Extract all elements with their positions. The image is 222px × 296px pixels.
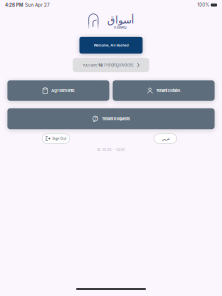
button[interactable]: Sign Out [42,134,70,143]
staticText: 4:28 PM [5,2,23,8]
staticText: أسواق [107,14,134,26]
button[interactable]: Agreements [7,80,109,101]
staticText: You have [82,63,98,67]
staticText: عربي [161,136,169,141]
staticText: ASWAQ [114,25,127,30]
button[interactable]: Tenant Details [113,80,214,101]
button[interactable]: You have [73,58,149,72]
staticText: ? [94,116,96,120]
staticText: 16 [98,63,103,67]
staticText: © 2024 - QDB [97,147,125,152]
staticText: Pending Invoices [103,63,133,67]
staticText: 100% [197,2,209,8]
staticText: Sign Out [52,136,66,141]
staticText: Sun Apr 27 [23,2,50,8]
staticText: Tenant Requests [102,116,130,121]
button[interactable]: Switch language to Arabic [154,134,177,143]
staticText: Welcome, Ali Rashed [93,43,128,47]
button[interactable]: Welcome, Ali Rashed [79,37,143,54]
button[interactable]: ? [7,108,215,129]
staticText: Tenant Details [156,88,180,93]
staticText: Agreements [51,88,74,93]
